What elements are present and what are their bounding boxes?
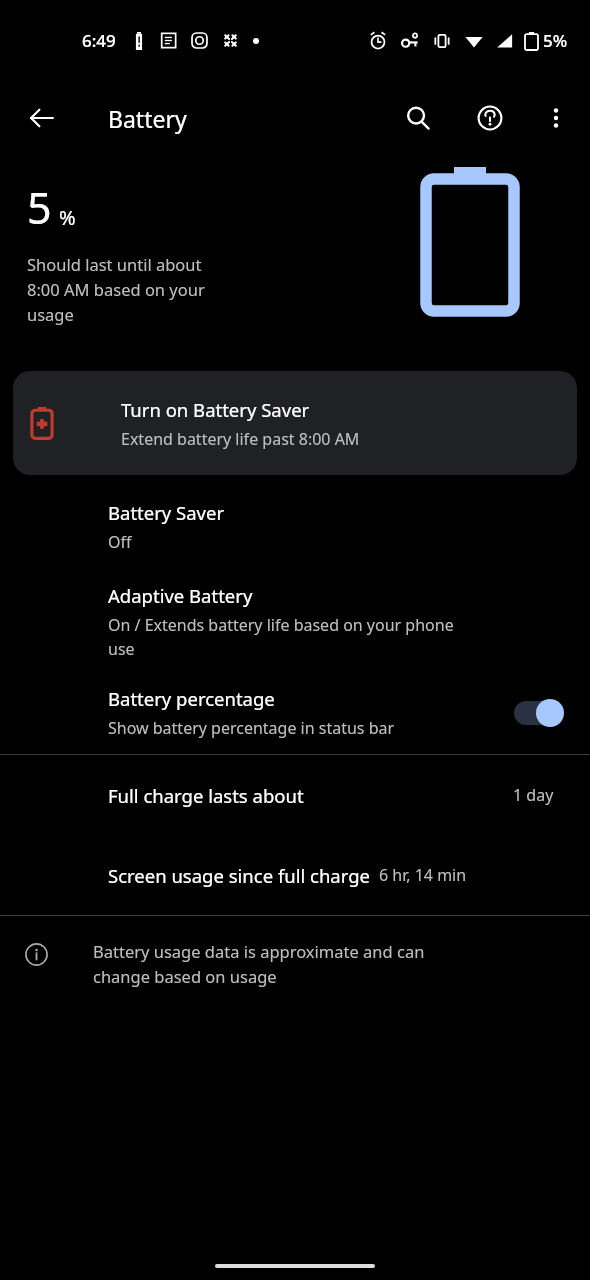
staticText: % [59,204,76,231]
button[interactable]: More options [532,94,580,142]
staticText: Should last until about 8:00 AM based on… [27,253,205,325]
staticText: Battery Saver [108,500,225,525]
staticText: On / Extends battery life based on your … [108,614,454,660]
button[interactable]: Battery percentage [0,686,590,739]
staticText: Extend battery life past 8:00 AM [121,428,360,450]
staticText: Show battery percentage in status bar [108,717,395,739]
button[interactable]: Turn on Battery Saver [13,371,577,475]
staticText: 5 [27,178,52,237]
staticText: Turn on Battery Saver [121,397,310,422]
staticText: Screen usage since full charge [108,863,371,888]
button[interactable]: Back [18,94,66,142]
staticText: 6:49 [82,29,116,52]
staticText: 6 hr, 14 min [379,864,467,886]
button[interactable]: Help [466,94,514,142]
staticText: Adaptive Battery [108,583,253,608]
button[interactable]: Battery Saver [0,500,590,553]
staticText: Battery [108,103,187,134]
staticText: Battery percentage [108,686,275,711]
button[interactable]: Screen usage since full charge [0,835,590,915]
staticText: 1 day [513,784,554,806]
staticText: Off [108,531,132,553]
button[interactable]: Adaptive Battery [0,583,590,660]
staticText: 5% [543,29,568,52]
button[interactable]: Full charge lasts about [0,755,590,835]
staticText: Full charge lasts about [108,783,304,808]
staticText: Battery usage data is approximate and ca… [93,940,425,988]
button[interactable]: Search [394,94,442,142]
